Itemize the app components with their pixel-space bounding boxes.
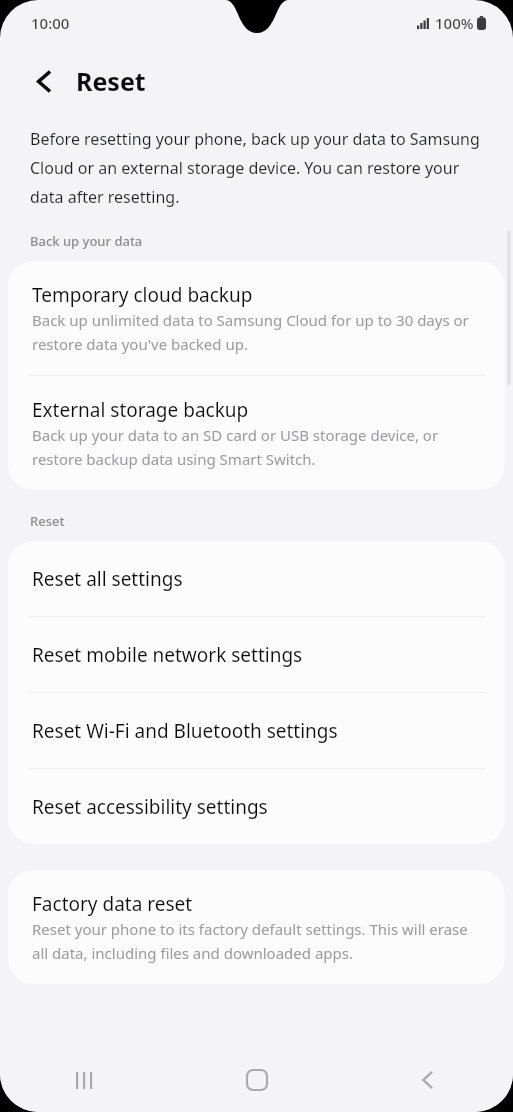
staticText: Back up unlimited data to Samsung Cloud … bbox=[32, 310, 481, 354]
button[interactable]: Reset all settings bbox=[8, 541, 505, 616]
staticText: Reset your phone to its factory default … bbox=[32, 919, 481, 963]
staticText: Reset Wi-Fi and Bluetooth settings bbox=[32, 718, 338, 744]
staticText: Factory data reset bbox=[32, 891, 193, 917]
button[interactable]: Back bbox=[24, 61, 64, 101]
staticText: Back up your data to an SD card or USB s… bbox=[32, 425, 481, 469]
button[interactable]: Back bbox=[342, 1048, 513, 1112]
staticText: 100% bbox=[435, 13, 474, 33]
button[interactable]: Reset Wi-Fi and Bluetooth settings bbox=[8, 693, 505, 768]
staticText: Reset bbox=[30, 512, 65, 530]
staticText: Reset bbox=[76, 64, 146, 98]
button[interactable]: Recent apps bbox=[0, 1048, 171, 1112]
staticText: 10:00 bbox=[31, 13, 70, 33]
staticText: Reset accessibility settings bbox=[32, 794, 268, 820]
staticText: Reset mobile network settings bbox=[32, 642, 303, 668]
button[interactable]: Reset accessibility settings bbox=[8, 769, 505, 844]
staticText: External storage backup bbox=[32, 397, 249, 423]
button[interactable]: External storage backup bbox=[8, 376, 505, 490]
staticText: Reset all settings bbox=[32, 566, 183, 592]
staticText: Before resetting your phone, back up you… bbox=[30, 128, 483, 207]
staticText: Back up your data bbox=[30, 232, 143, 250]
button[interactable]: Temporary cloud backup bbox=[8, 261, 505, 375]
button[interactable]: Factory data reset bbox=[8, 870, 505, 984]
button[interactable]: Reset mobile network settings bbox=[8, 617, 505, 692]
staticText: Temporary cloud backup bbox=[32, 282, 253, 308]
button[interactable]: Home bbox=[171, 1048, 342, 1112]
